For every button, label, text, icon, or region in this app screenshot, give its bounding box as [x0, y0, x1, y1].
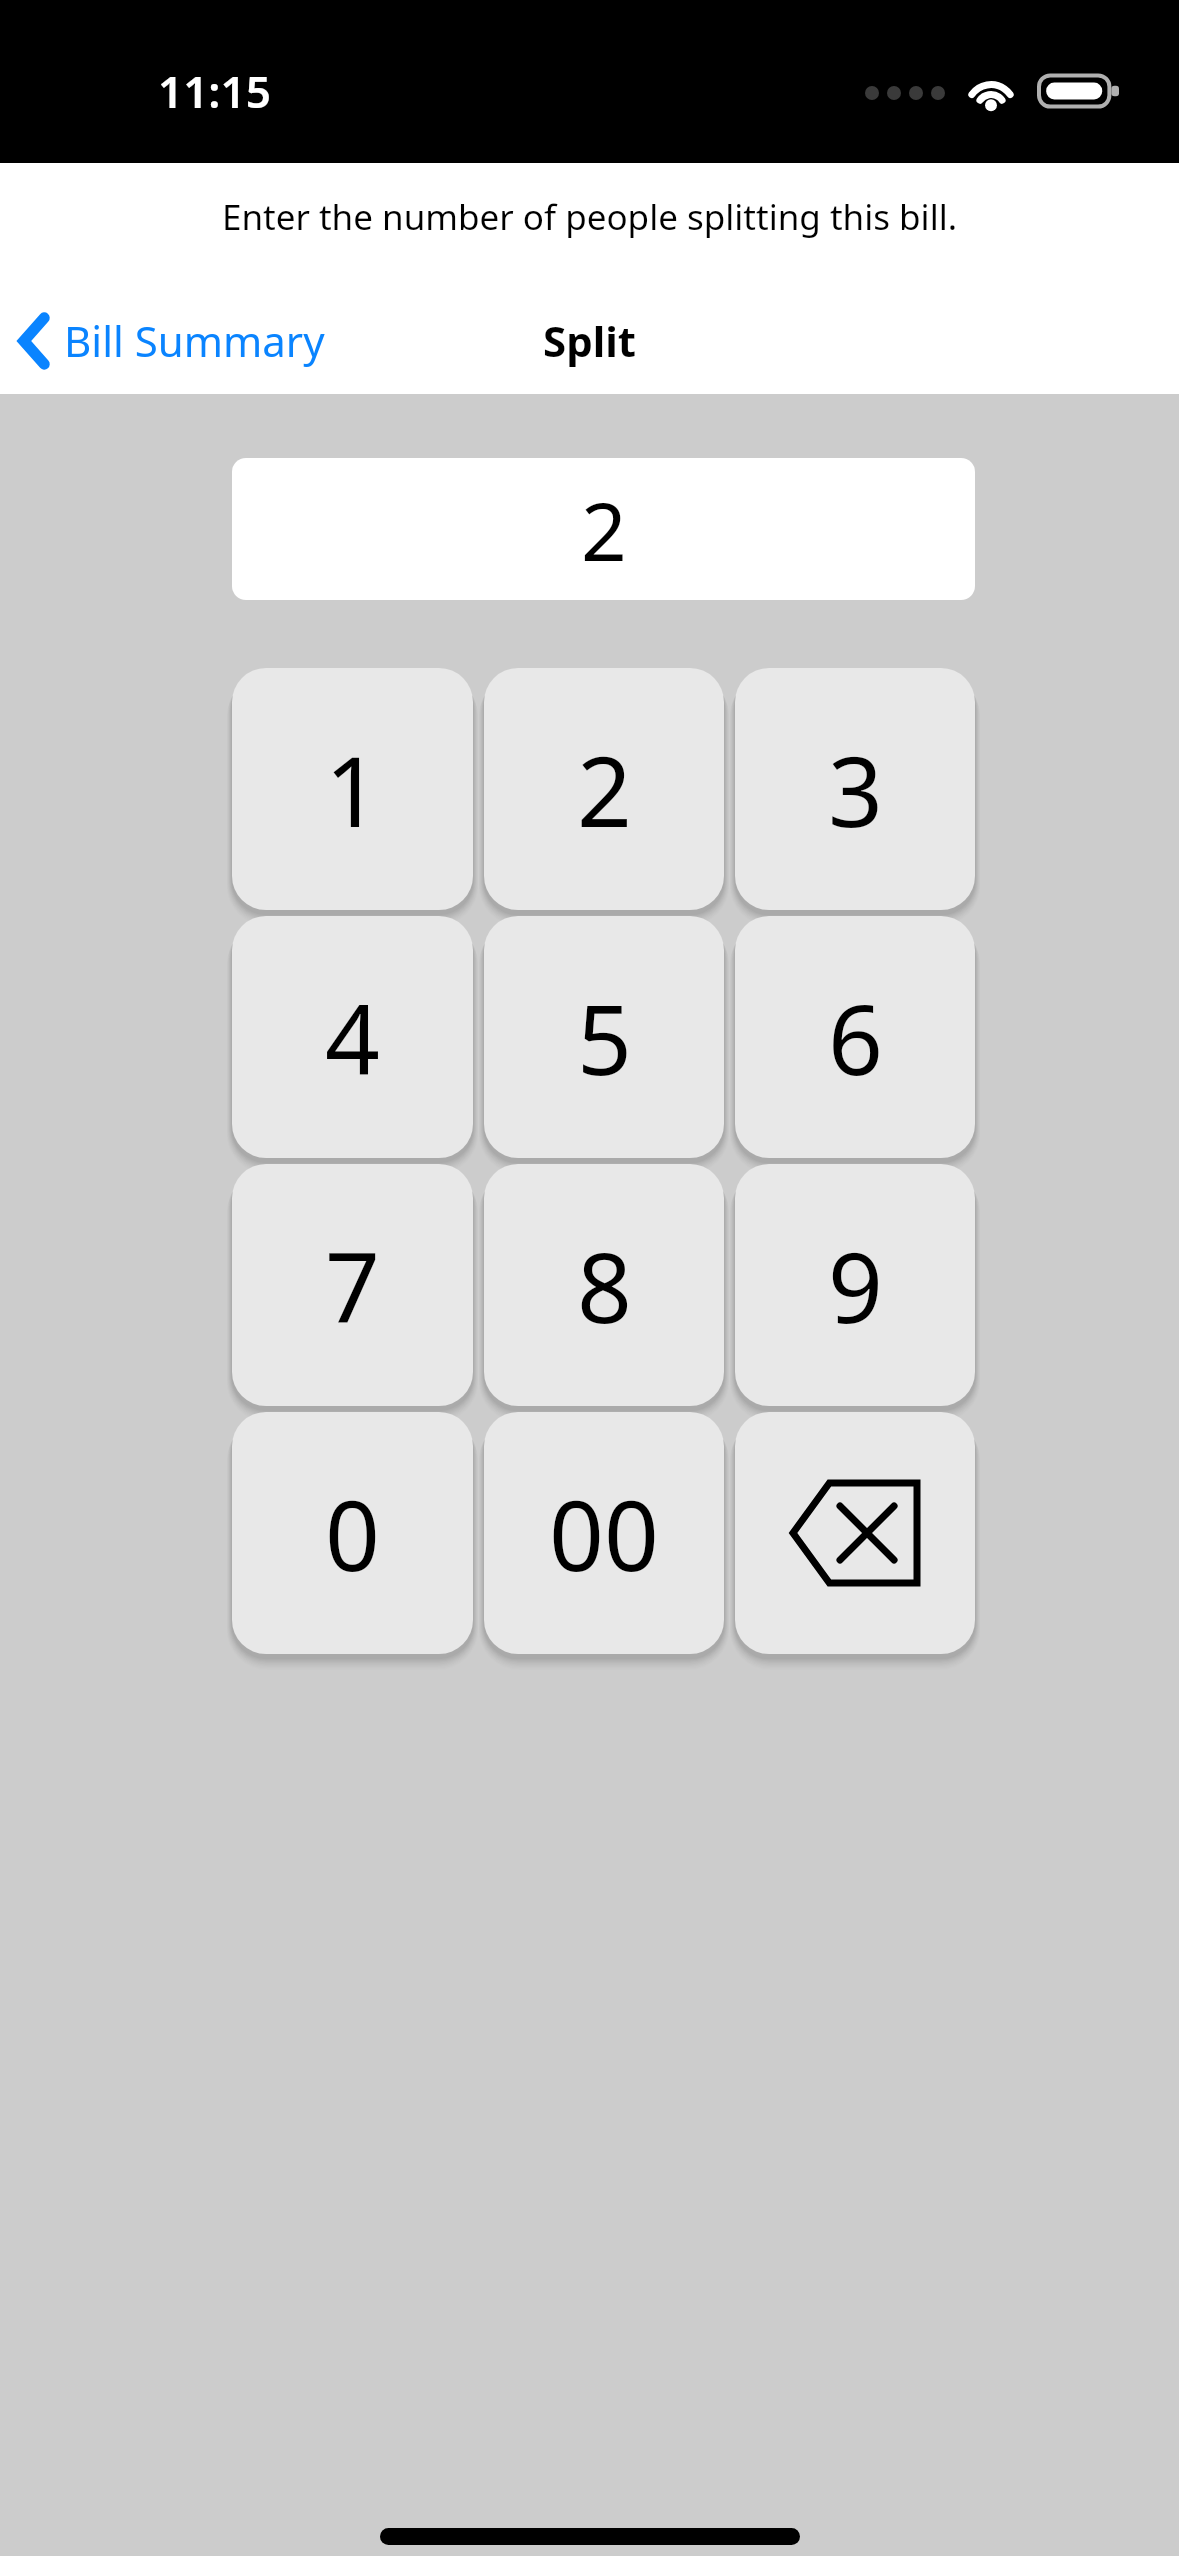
button[interactable]: 2	[232, 458, 975, 600]
button[interactable]: 5	[484, 916, 724, 1158]
button[interactable]: 4	[232, 916, 473, 1158]
button[interactable]: 00	[484, 1412, 724, 1654]
staticText: 6	[828, 972, 883, 1103]
staticText: 11:15	[158, 61, 271, 121]
staticText: 1	[325, 724, 380, 855]
staticText: 8	[577, 1220, 632, 1351]
staticText: 2	[581, 475, 627, 584]
button[interactable]: 3	[735, 668, 975, 910]
button[interactable]: 8	[484, 1164, 724, 1406]
button[interactable]: 0	[232, 1412, 473, 1654]
staticText: Enter the number of people splitting thi…	[24, 193, 1155, 241]
button[interactable]: Bill Summary	[0, 304, 341, 377]
staticText: 4	[325, 972, 380, 1103]
staticText: 3	[828, 724, 883, 855]
button[interactable]: 9	[735, 1164, 975, 1406]
button[interactable]: 2	[484, 668, 724, 910]
staticText: 0	[325, 1468, 380, 1599]
button[interactable]: 6	[735, 916, 975, 1158]
staticText: 2	[577, 724, 632, 855]
staticText: 7	[325, 1220, 380, 1351]
staticText: 00	[549, 1468, 659, 1599]
button[interactable]: Backspace	[735, 1412, 975, 1654]
button[interactable]: 7	[232, 1164, 473, 1406]
button[interactable]: 1	[232, 668, 473, 910]
staticText: Bill Summary	[64, 312, 325, 369]
staticText: Split	[543, 312, 636, 369]
staticText: 9	[828, 1220, 883, 1351]
staticText: 5	[577, 972, 632, 1103]
